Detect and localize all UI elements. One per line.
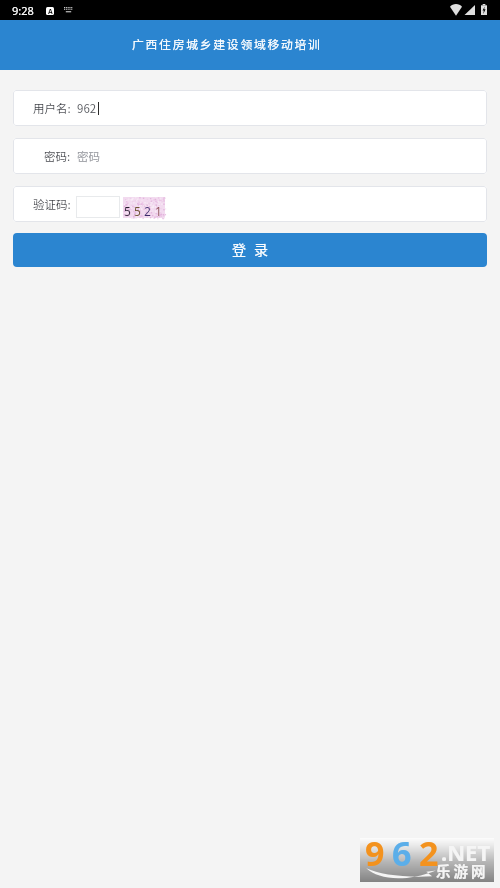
other: Signal [464, 5, 475, 15]
staticText: 密码: [44, 148, 71, 165]
button[interactable]: 登 [13, 233, 487, 267]
staticText: 2 [419, 830, 439, 874]
staticText: .NET [441, 837, 491, 867]
button[interactable] [76, 196, 120, 218]
staticText: 962 [77, 100, 97, 117]
staticText: 登 [232, 239, 246, 259]
other: Keyboard [64, 7, 73, 13]
staticText: 5 [134, 203, 141, 219]
staticText: 录 [254, 239, 268, 259]
staticText: 9:28 [12, 3, 34, 18]
button[interactable]: 用户名: [13, 90, 487, 126]
staticText: A [48, 7, 53, 15]
staticText: 乐游网 [436, 860, 489, 881]
button[interactable]: 验证码: [13, 186, 487, 222]
staticText: 1 [155, 203, 162, 219]
staticText: 5 [124, 203, 131, 219]
button[interactable]: 密码: [13, 138, 487, 174]
button[interactable]: Refresh verification code [123, 197, 165, 218]
staticText: 用户名: [33, 100, 71, 117]
staticText: 验证码: [33, 196, 71, 213]
staticText: 6 [392, 830, 419, 874]
staticText: 密码 [77, 148, 100, 165]
staticText: 广西住房城乡建设领域移动培训 [132, 35, 322, 52]
staticText: 9 [365, 830, 392, 874]
other: Battery [481, 4, 487, 15]
staticText: 2 [144, 203, 151, 219]
other: Wi-Fi [450, 4, 462, 16]
